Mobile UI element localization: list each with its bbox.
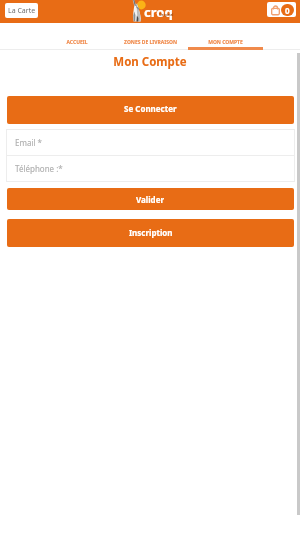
staticText: Se Connecter — [124, 103, 177, 114]
button[interactable]: Email * — [6, 130, 295, 155]
staticText: Téléphone :* — [15, 163, 63, 174]
staticText: 0 — [285, 5, 290, 16]
button[interactable]: Inscription — [7, 219, 294, 247]
button[interactable]: ZONES DE LIVRAISON — [112, 23, 188, 50]
staticText: Original — [159, 12, 174, 17]
staticText: Mon Compte — [0, 54, 300, 70]
staticText: ZONES DE LIVRAISON — [124, 39, 177, 46]
button[interactable]: Panier — [267, 2, 296, 17]
button[interactable]: Téléphone :* — [6, 156, 295, 181]
staticText: croq — [144, 3, 173, 21]
staticText: ACCUEIL — [66, 39, 88, 46]
staticText: La Carte — [8, 6, 36, 16]
staticText: MON COMPTE — [208, 39, 243, 46]
staticText: Inscription — [129, 227, 173, 238]
button[interactable]: La Carte — [5, 3, 38, 18]
button[interactable]: Valider — [7, 188, 294, 210]
staticText: Valider — [136, 194, 165, 205]
staticText: Email * — [15, 137, 43, 148]
button[interactable]: ACCUEIL — [41, 23, 112, 50]
button[interactable]: MON COMPTE — [188, 23, 263, 50]
button[interactable]: Se Connecter — [7, 96, 294, 124]
